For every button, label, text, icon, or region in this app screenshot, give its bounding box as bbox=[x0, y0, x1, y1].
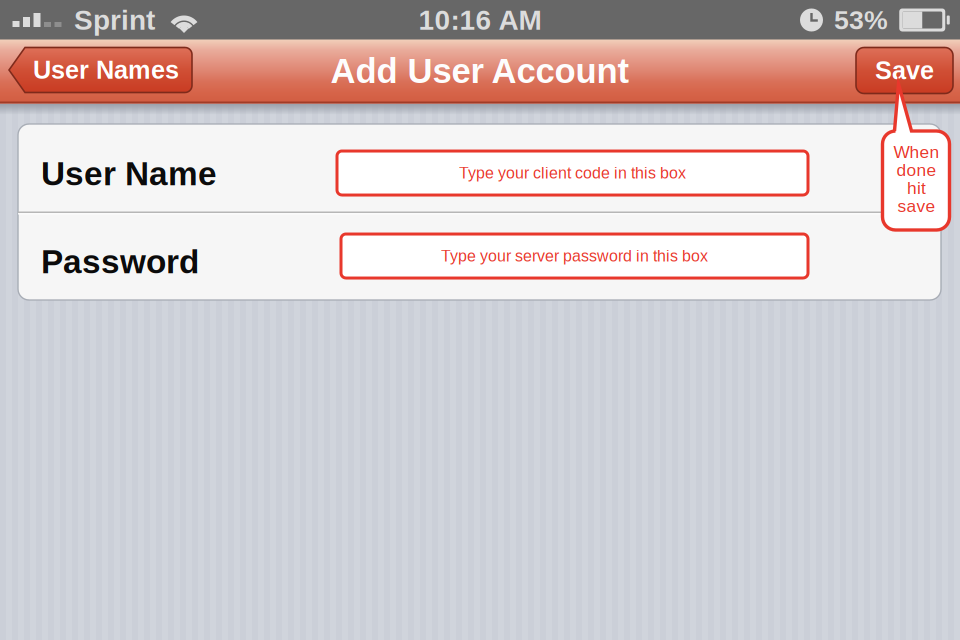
staticText: done bbox=[896, 160, 936, 180]
staticText: Type your server password in this box bbox=[441, 247, 708, 265]
staticText: User Names bbox=[33, 56, 179, 84]
button[interactable]: User Names bbox=[9, 47, 192, 92]
staticText: When bbox=[893, 142, 939, 162]
staticText: Password bbox=[41, 243, 199, 280]
staticText: 10:16 AM bbox=[418, 4, 541, 36]
staticText: Sprint bbox=[74, 4, 155, 36]
staticText: hit bbox=[907, 178, 926, 198]
staticText: 53% bbox=[834, 5, 888, 35]
staticText: Type your client code in this box bbox=[459, 164, 686, 182]
button[interactable]: Save bbox=[856, 47, 953, 93]
staticText: save bbox=[897, 196, 935, 216]
staticText: User Name bbox=[41, 155, 217, 192]
staticText: Add User Account bbox=[330, 52, 629, 90]
staticText: Save bbox=[875, 56, 934, 85]
